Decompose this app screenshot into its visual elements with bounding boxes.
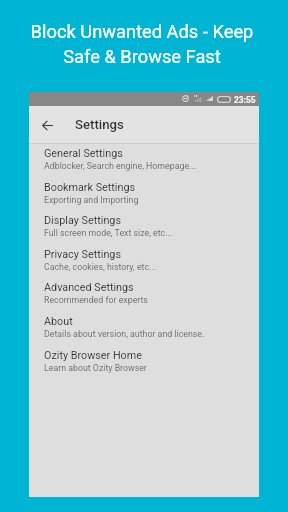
staticText: About (44, 315, 73, 328)
staticText: Exporting and Importing (44, 195, 139, 205)
staticText: Recommended for experts (44, 295, 148, 305)
staticText: Adblocker, Search engine, Homepage... (44, 161, 197, 171)
staticText: Settings (75, 117, 124, 132)
button[interactable]: Ozity Browser Home (29, 345, 259, 379)
staticText: Block Unwanted Ads - Keep Safe & Browse … (0, 21, 286, 67)
staticText: Bookmark Settings (44, 181, 136, 194)
staticText: Details about version, author and licens… (44, 329, 205, 339)
staticText: Privacy Settings (44, 248, 121, 261)
button[interactable]: Bookmark Settings (29, 177, 259, 211)
staticText: Display Settings (44, 214, 121, 227)
staticText: Cache, cookies, history, etc... (44, 262, 157, 272)
staticText: 41% (219, 96, 230, 103)
button[interactable]: Advanced Settings (29, 277, 259, 311)
staticText: Learn about Ozity Browser (44, 363, 147, 373)
staticText: Ozity Browser Home (44, 349, 142, 362)
staticText: Advanced Settings (44, 281, 134, 294)
button[interactable]: About (29, 311, 259, 345)
staticText: 23:55 (234, 95, 256, 105)
button[interactable]: Back (35, 113, 59, 137)
staticText: General Settings (44, 147, 123, 160)
button[interactable]: Privacy Settings (29, 244, 259, 278)
staticText: Full screen mode, Text size, etc... (44, 228, 173, 238)
button[interactable]: General Settings (29, 143, 259, 177)
button[interactable]: Display Settings (29, 210, 259, 244)
